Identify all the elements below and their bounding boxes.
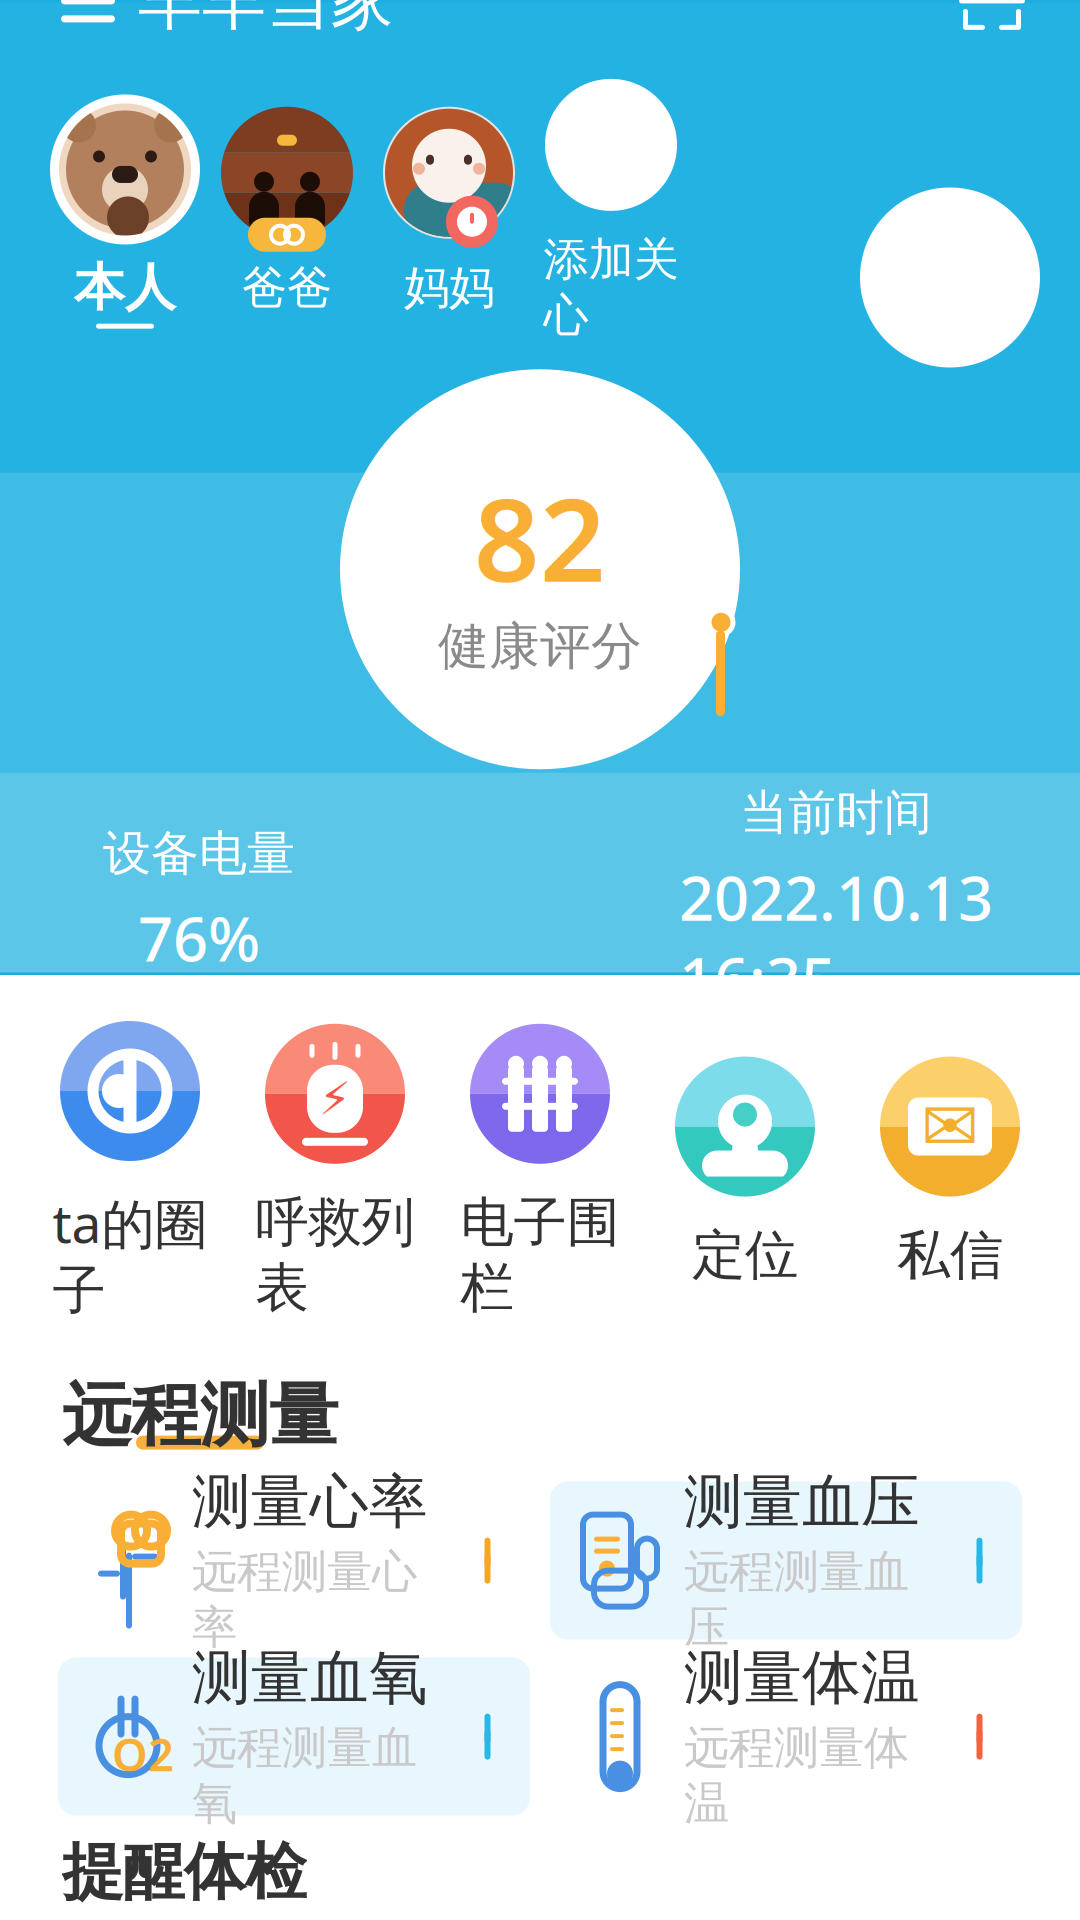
staticText: 当前时间 [740,783,932,842]
staticText: 测量血压 [684,1466,920,1538]
staticText: 2022.10.13 16:35 [679,856,993,1019]
button[interactable]: 测量体温 [550,1658,1022,1816]
staticText: 健康评分 [438,615,642,677]
button[interactable]: Scan [952,0,1032,41]
staticText: 呼救列表 [255,1190,414,1321]
staticText: 私信 [897,1222,1003,1288]
staticText: 远程测量心率 [192,1544,417,1655]
button[interactable]: Menu [48,0,128,41]
staticText: 爸爸 [242,260,332,315]
staticText: 本人 [74,256,176,319]
staticText: ta的圈子 [52,1187,207,1324]
button[interactable]: 妈妈 [368,98,530,325]
button[interactable]: ta的圈子 [27,1021,232,1324]
staticText: 测量心率 [192,1466,428,1538]
staticText: O2 [112,1723,174,1784]
staticText: 远程测量 [62,1373,338,1458]
staticText: 设备电量 [103,824,295,883]
button[interactable]: 羊羊当家 [128,0,394,40]
staticText: 定位 [692,1222,798,1288]
staticText: 羊羊当家 [138,0,394,40]
button[interactable]: ⚡︎ [232,1024,437,1321]
staticText: ✉ [921,1087,979,1166]
staticText: ⚡︎ [319,1073,351,1125]
button[interactable]: 测量心率 [58,1482,530,1640]
button[interactable]: O2 [58,1658,530,1816]
button[interactable]: 爸爸 [206,98,368,325]
staticText: 测量血氧 [192,1642,428,1714]
button[interactable]: 电子围栏 [437,1024,642,1321]
button[interactable]: ✉ [847,1056,1052,1288]
staticText: 电子围栏 [460,1190,619,1321]
staticText: 82 [474,461,606,613]
staticText: 测量体温 [684,1642,920,1714]
button[interactable]: 添加关心 [530,70,692,353]
staticText: 远程测量体温 [684,1720,909,1831]
staticText: 添加关心 [543,232,678,343]
button[interactable]: 定位 [642,1056,847,1288]
staticText: 远程测量血氧 [192,1720,417,1831]
staticText: 76% [138,897,260,978]
button[interactable]: 本人 [44,94,206,329]
staticText: 提醒体检 [62,1835,306,1910]
staticText: 远程测量血压 [684,1544,909,1655]
button[interactable]: 测量血压 [550,1482,1022,1640]
staticText: 妈妈 [404,260,494,315]
